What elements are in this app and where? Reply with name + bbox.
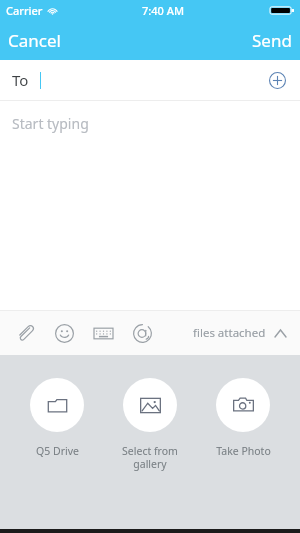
staticText: Carrier (6, 3, 43, 18)
staticText: Cancel (8, 29, 61, 52)
button[interactable]: Add recipient (264, 67, 290, 93)
button[interactable]: files attached (189, 319, 290, 347)
button[interactable]: Cancel (0, 23, 73, 58)
button[interactable]: Start typing (0, 101, 300, 310)
staticText: Start typing (12, 114, 89, 133)
button[interactable]: Send (240, 23, 300, 58)
staticText: 7:40 AM (142, 3, 185, 18)
button[interactable]: Take Photo (197, 378, 289, 458)
staticText: To (12, 70, 29, 90)
button[interactable]: Keyboard (90, 320, 116, 346)
button[interactable]: Q5 Drive (11, 378, 103, 458)
staticText: Select from gallery (122, 444, 178, 471)
button[interactable]: Attach file (12, 320, 38, 346)
button[interactable]: Mention (129, 320, 155, 346)
staticText: Q5 Drive (36, 444, 79, 458)
button[interactable]: Select from gallery (104, 378, 196, 471)
staticText: Take Photo (216, 444, 271, 458)
staticText: Send (252, 29, 292, 52)
button[interactable]: Emoji (51, 320, 77, 346)
staticText: files attached (193, 325, 266, 341)
